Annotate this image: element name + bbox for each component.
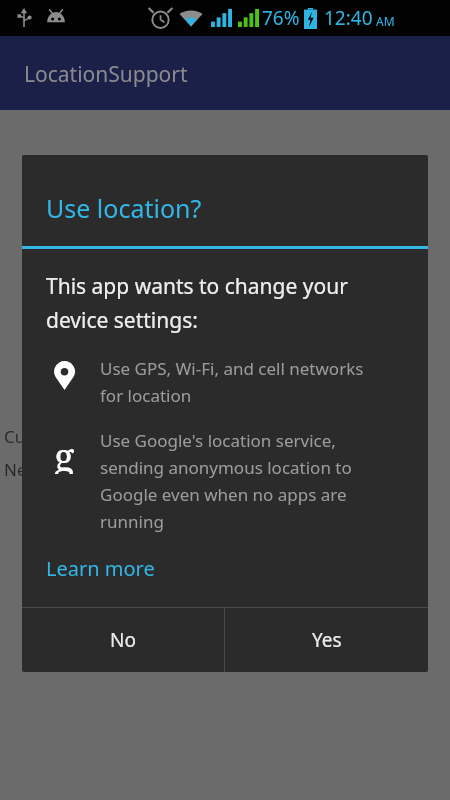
button[interactable]: No bbox=[22, 608, 224, 672]
staticText: Use GPS, Wi-Fi, and cell networks bbox=[100, 357, 364, 380]
staticText: 76% bbox=[262, 5, 300, 31]
staticText: AM bbox=[376, 13, 395, 29]
staticText: Ne bbox=[4, 458, 27, 481]
staticText: Cu bbox=[4, 425, 26, 448]
staticText: No bbox=[110, 627, 136, 653]
staticText: Learn more bbox=[46, 555, 155, 582]
staticText: sending anonymous location to bbox=[100, 456, 352, 479]
button[interactable]: Yes bbox=[225, 608, 428, 672]
staticText: Yes bbox=[312, 627, 342, 653]
staticText: for location bbox=[100, 384, 192, 407]
staticText: Google even when no apps are bbox=[100, 483, 347, 506]
staticText: Use Google's location service, bbox=[100, 429, 336, 452]
staticText: g bbox=[54, 430, 75, 474]
staticText: device settings: bbox=[46, 306, 198, 335]
staticText: This app wants to change your bbox=[46, 272, 348, 301]
staticText: LocationSupport bbox=[24, 60, 188, 89]
staticText: running bbox=[100, 510, 164, 533]
button[interactable]: Learn more bbox=[22, 553, 179, 590]
staticText: 12:40 bbox=[324, 5, 373, 31]
staticText: Use location? bbox=[46, 191, 202, 225]
